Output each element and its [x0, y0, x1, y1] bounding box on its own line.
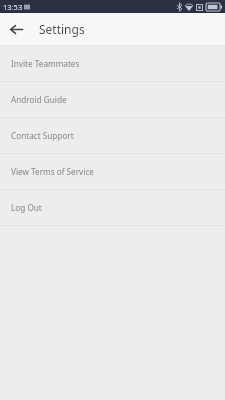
staticText: Log Out: [11, 202, 42, 213]
staticText: 13:53: [3, 2, 23, 12]
button[interactable]: View Terms of Service: [0, 154, 225, 189]
staticText: View Terms of Service: [11, 166, 94, 177]
staticText: Android Guide: [11, 94, 67, 105]
staticText: Contact Support: [11, 130, 74, 141]
button[interactable]: Back: [0, 13, 32, 45]
button[interactable]: Contact Support: [0, 118, 225, 153]
button[interactable]: Invite Teammates: [0, 46, 225, 81]
button[interactable]: Android Guide: [0, 82, 225, 117]
button[interactable]: Log Out: [0, 190, 225, 225]
staticText: Invite Teammates: [11, 58, 80, 69]
staticText: Settings: [39, 21, 85, 37]
